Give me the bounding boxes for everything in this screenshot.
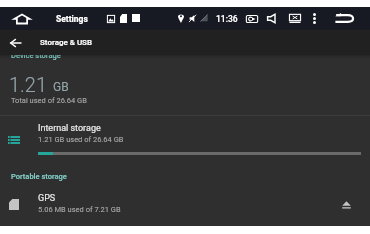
staticText: Portable storage [11, 172, 67, 181]
staticText: 5.06 MB used of 7.21 GB [38, 205, 121, 214]
button[interactable]: GPS [0, 186, 370, 224]
staticText: Total used of 26.64 GB [11, 96, 87, 105]
button[interactable]: More options [306, 7, 322, 30]
staticText: Device storage [11, 51, 61, 60]
button[interactable]: Home [7, 7, 37, 30]
staticText: GB [53, 80, 69, 94]
button[interactable]: Internal storage [0, 116, 370, 161]
staticText: Storage & USB [40, 38, 92, 47]
staticText: 11:36 [216, 14, 238, 24]
staticText: 1.21 GB used of 26.64 GB [38, 135, 124, 144]
staticText: GPS [38, 193, 56, 204]
button[interactable]: Eject [332, 186, 360, 224]
staticText: Settings [56, 14, 88, 24]
button[interactable]: Navigate up [0, 30, 31, 55]
button[interactable]: Back [332, 7, 356, 30]
staticText: Internal storage [38, 123, 101, 134]
staticText: 1.21 [9, 73, 48, 96]
